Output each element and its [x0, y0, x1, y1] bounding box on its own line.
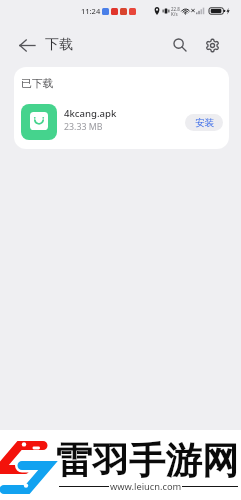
staticText: 安装	[195, 117, 214, 129]
button[interactable]: Search	[164, 27, 196, 63]
staticText: 雷羽手游网	[56, 438, 239, 484]
staticText: 22.8 K/s	[171, 6, 180, 17]
staticText: 23.33 MB	[64, 121, 103, 133]
button[interactable]: 安装	[185, 114, 223, 131]
staticText: 下载	[45, 36, 73, 54]
staticText: www.leiucn.com	[110, 480, 182, 493]
staticText: 4kcang.apk	[64, 107, 117, 120]
button[interactable]: Back	[12, 27, 42, 63]
staticText: 11:24	[81, 6, 101, 16]
staticText: 已下载	[21, 77, 54, 91]
button[interactable]: Settings	[196, 27, 228, 63]
